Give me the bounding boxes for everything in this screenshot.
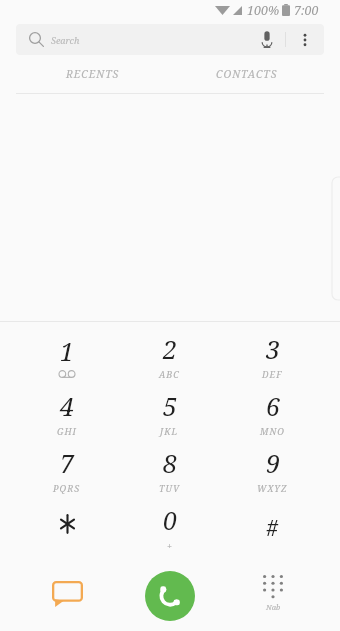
button[interactable]: 7 [16, 441, 118, 498]
staticText: 7 [60, 446, 74, 480]
staticText: 0 [163, 503, 177, 537]
staticText: # [266, 512, 279, 542]
button[interactable]: Call [145, 571, 195, 621]
button[interactable]: 9 [221, 441, 324, 498]
staticText: Nab [266, 602, 281, 612]
staticText: 7:00 [294, 2, 319, 19]
staticText: ABC [159, 368, 180, 380]
button[interactable]: 4 [16, 384, 118, 441]
button[interactable]: # [221, 498, 324, 555]
staticText: MNO [260, 425, 285, 437]
button[interactable] [16, 498, 118, 555]
staticText: PQRS [53, 482, 81, 494]
staticText: JKL [160, 425, 179, 437]
staticText: CONTACTS [216, 67, 278, 81]
staticText: TUV [159, 482, 181, 494]
staticText: GHI [57, 425, 77, 437]
staticText: 1 [60, 334, 74, 368]
button[interactable]: CONTACTS [170, 55, 324, 93]
staticText: WXYZ [257, 482, 288, 494]
staticText: 100% [247, 2, 280, 19]
staticText: 2 [163, 332, 177, 366]
staticText: + [167, 539, 174, 551]
staticText: 5 [163, 389, 177, 423]
staticText: 4 [60, 389, 74, 423]
staticText: 3 [266, 332, 280, 366]
button[interactable]: More options [286, 24, 324, 55]
staticText: RECENTS [66, 67, 120, 81]
button[interactable]: 1 [16, 327, 118, 384]
button[interactable]: 0 [118, 498, 221, 555]
button[interactable]: 5 [118, 384, 221, 441]
button[interactable]: Voice search [249, 24, 285, 55]
staticText: DEF [262, 368, 283, 380]
button[interactable]: 3 [221, 327, 324, 384]
button[interactable]: RECENTS [16, 55, 170, 93]
button[interactable]: 8 [118, 441, 221, 498]
staticText: 9 [266, 446, 280, 480]
button[interactable]: Message [16, 560, 118, 631]
staticText: Search [51, 34, 80, 46]
button[interactable]: 6 [221, 384, 324, 441]
button[interactable]: 2 [118, 327, 221, 384]
staticText: 6 [266, 389, 280, 423]
button[interactable]: Dialpad [221, 560, 324, 631]
staticText: 8 [163, 446, 177, 480]
